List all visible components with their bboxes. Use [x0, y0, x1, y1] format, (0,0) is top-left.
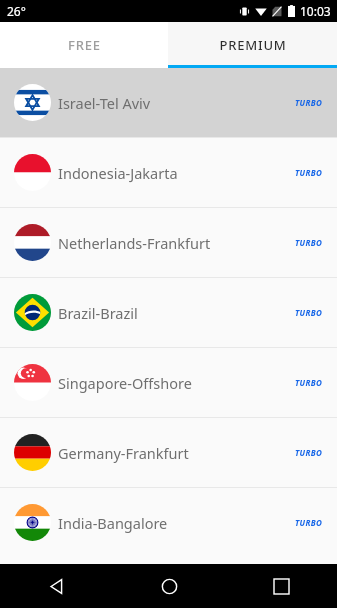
button[interactable]: FREE	[0, 22, 168, 68]
staticText: TURBO	[295, 517, 323, 528]
button[interactable]: Back	[0, 564, 113, 608]
button[interactable]: India-Bangalore	[0, 488, 337, 557]
staticText: Brazil-Brazil	[58, 303, 138, 323]
staticText: TURBO	[295, 237, 323, 248]
staticText: TURBO	[295, 97, 323, 108]
staticText: TURBO	[295, 167, 323, 178]
button[interactable]: Indonesia-Jakarta	[0, 138, 337, 207]
staticText: 10:03	[300, 3, 331, 19]
button[interactable]: Recent apps	[225, 564, 337, 608]
button[interactable]: Singapore-Offshore	[0, 348, 337, 417]
button[interactable]: PREMIUM	[168, 22, 337, 68]
staticText: TURBO	[295, 307, 323, 318]
button[interactable]: Home	[113, 564, 225, 608]
staticText: FREE	[68, 36, 101, 54]
staticText: Germany-Frankfurt	[58, 443, 189, 463]
button[interactable]: Brazil-Brazil	[0, 278, 337, 347]
staticText: Netherlands-Frankfurt	[58, 233, 211, 253]
staticText: PREMIUM	[219, 36, 287, 54]
button[interactable]: Germany-Frankfurt	[0, 418, 337, 487]
staticText: India-Bangalore	[58, 513, 168, 533]
staticText: Israel-Tel Aviv	[58, 93, 151, 113]
staticText: Singapore-Offshore	[58, 373, 192, 393]
staticText: TURBO	[295, 447, 323, 458]
staticText: 26°	[7, 3, 26, 19]
staticText: Indonesia-Jakarta	[58, 163, 178, 183]
button[interactable]: Israel-Tel Aviv	[0, 68, 337, 137]
staticText: TURBO	[295, 377, 323, 388]
button[interactable]: Netherlands-Frankfurt	[0, 208, 337, 277]
